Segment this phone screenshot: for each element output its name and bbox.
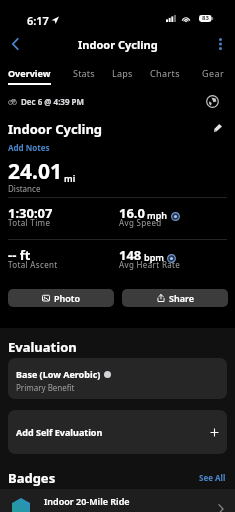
staticText: Base (Low Aerobic) <box>16 368 101 380</box>
staticText: 83 <box>202 14 209 22</box>
staticText: 148 <box>119 246 142 264</box>
staticText: Total Ascent <box>8 259 58 270</box>
button[interactable]: Photo <box>8 289 114 307</box>
staticText: Overview <box>8 67 51 79</box>
staticText: Stats <box>73 67 95 79</box>
staticText: See All <box>199 472 226 483</box>
staticText: Indoor Cycling <box>78 37 158 52</box>
button[interactable]: Add Notes <box>8 142 50 153</box>
staticText: mi <box>64 172 76 184</box>
staticText: 1:30:07 <box>8 204 53 222</box>
staticText: Photo <box>54 292 81 304</box>
staticText: Indoor Cycling <box>8 120 103 138</box>
button[interactable]: Indoor 20-Mile Ride <box>0 489 235 512</box>
button[interactable]: Share <box>122 289 228 307</box>
staticText: Evaluation <box>8 338 77 356</box>
staticText: Laps <box>112 67 133 79</box>
button[interactable]: See All <box>199 472 226 483</box>
button[interactable]: Overview <box>8 64 51 82</box>
button[interactable]: Laps <box>112 64 133 82</box>
button[interactable]: Privacy <box>206 95 219 108</box>
button[interactable]: Add Self Evaluation <box>8 410 227 454</box>
staticText: Primary Benefit <box>16 382 75 393</box>
button[interactable]: Base (Low Aerobic) <box>8 358 227 399</box>
staticText: bpm <box>144 251 164 263</box>
staticText: 6:17 <box>27 13 49 28</box>
staticText: 16.0 <box>119 204 145 222</box>
staticText: Add Notes <box>8 142 50 153</box>
staticText: Charts <box>150 67 180 79</box>
staticText: Gear <box>202 67 224 79</box>
staticText: Badges <box>8 469 56 487</box>
staticText: Dec 6 @ 4:39 PM <box>21 96 84 107</box>
button[interactable]: Back <box>4 35 26 53</box>
staticText: mph <box>147 209 168 221</box>
button[interactable]: More options <box>210 35 230 53</box>
staticText: -- ft <box>8 246 31 264</box>
button[interactable]: Edit <box>210 120 226 136</box>
button[interactable]: Charts <box>150 64 180 82</box>
staticText: Indoor 20-Mile Ride <box>44 495 130 507</box>
staticText: Add Self Evaluation <box>16 426 103 438</box>
staticText: Total Time <box>8 217 51 228</box>
staticText: 24.01 <box>8 157 62 186</box>
staticText: Avg Speed <box>119 217 162 228</box>
button[interactable]: Stats <box>73 64 95 82</box>
staticText: Distance <box>8 183 41 194</box>
staticText: Avg Heart Rate <box>119 259 181 270</box>
button[interactable]: Gear <box>202 64 224 82</box>
staticText: Share <box>169 292 194 304</box>
